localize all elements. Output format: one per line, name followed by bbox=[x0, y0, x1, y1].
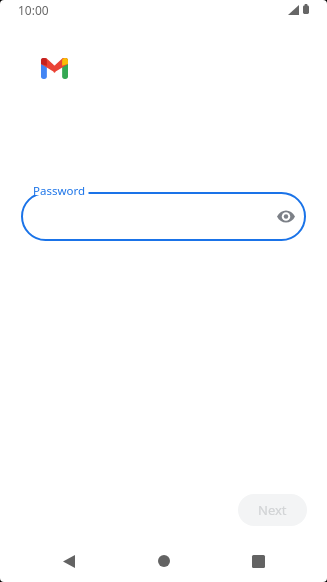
button[interactable]: Recent apps bbox=[235, 540, 281, 582]
button[interactable]: Next bbox=[238, 494, 307, 526]
staticText: 10:00 bbox=[18, 2, 49, 18]
staticText: Password bbox=[33, 183, 86, 199]
staticText: Next bbox=[258, 501, 287, 519]
button[interactable]: Home bbox=[141, 540, 187, 582]
button[interactable]: Show password bbox=[21, 192, 306, 241]
button[interactable]: Back bbox=[46, 540, 92, 582]
button[interactable]: Show password bbox=[277, 210, 295, 223]
